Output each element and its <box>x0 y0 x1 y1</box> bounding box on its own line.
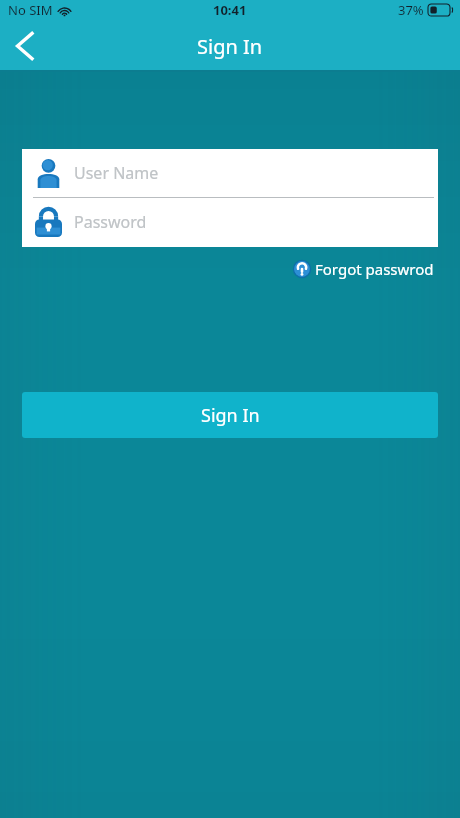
button[interactable]: Sign In <box>22 392 438 438</box>
staticText: Sign In <box>197 33 263 60</box>
staticText: Forgot passwrod <box>315 259 434 279</box>
staticText: Password <box>74 211 147 233</box>
staticText: Sign In <box>201 403 260 428</box>
button[interactable]: User Name <box>22 149 438 197</box>
button[interactable]: Password <box>22 198 438 246</box>
staticText: 10:41 <box>213 1 247 19</box>
button[interactable]: Forgot passwrod <box>292 256 434 282</box>
button[interactable]: Back <box>0 21 50 71</box>
staticText: User Name <box>74 162 159 184</box>
staticText: No SIM <box>8 1 53 19</box>
staticText: 37% <box>398 1 424 19</box>
